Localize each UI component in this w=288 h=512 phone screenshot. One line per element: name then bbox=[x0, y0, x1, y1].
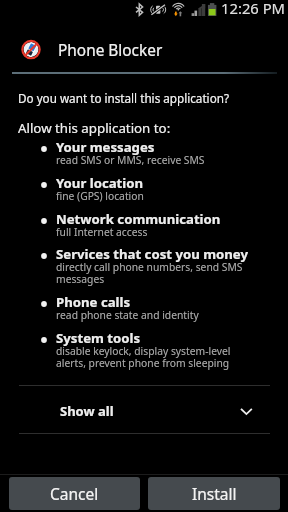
staticText: Phone calls bbox=[56, 293, 131, 311]
staticText: Install bbox=[192, 483, 237, 504]
staticText: Network communication bbox=[56, 210, 221, 228]
button[interactable]: Cancel bbox=[9, 477, 140, 510]
staticText: Your messages bbox=[56, 138, 155, 156]
staticText: disable keylock, display system-level al… bbox=[56, 344, 231, 370]
staticText: Phone Blocker bbox=[58, 40, 163, 61]
staticText: System tools bbox=[56, 329, 141, 347]
staticText: 12:26 PM bbox=[221, 0, 286, 18]
staticText: Allow this application to: bbox=[18, 119, 171, 137]
staticText: read phone state and identity bbox=[56, 308, 199, 322]
button[interactable]: Show all bbox=[0, 386, 288, 433]
other: App icon bbox=[19, 38, 43, 62]
staticText: fine (GPS) location bbox=[56, 189, 144, 203]
staticText: directly call phone numbers, send SMS me… bbox=[56, 260, 243, 286]
staticText: Your location bbox=[56, 174, 144, 192]
staticText: Do you want to install this application? bbox=[18, 90, 229, 106]
button[interactable]: Install bbox=[148, 477, 280, 510]
staticText: Cancel bbox=[50, 483, 99, 504]
staticText: full Internet access bbox=[56, 225, 148, 239]
staticText: Services that cost you money bbox=[56, 245, 248, 263]
staticText: read SMS or MMS, receive SMS bbox=[56, 153, 205, 167]
staticText: Show all bbox=[60, 402, 114, 420]
